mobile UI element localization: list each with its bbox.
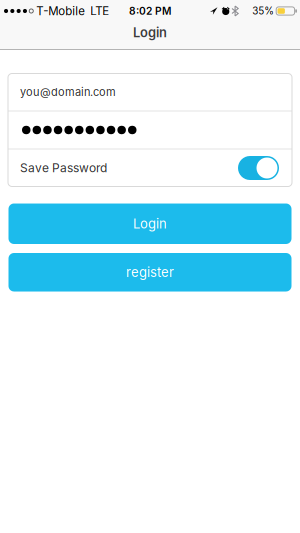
- button[interactable]: Save Password: [238, 156, 279, 180]
- staticText: Save Password: [20, 161, 107, 175]
- button[interactable]: Email: [8, 73, 292, 110]
- staticText: LTE: [90, 4, 109, 18]
- staticText: 8:02 PM: [129, 5, 171, 17]
- staticText: Login: [133, 216, 167, 232]
- staticText: you@domain.com: [20, 85, 116, 99]
- button[interactable]: Password: [8, 111, 292, 148]
- staticText: T-Mobile: [36, 4, 85, 18]
- staticText: register: [126, 264, 174, 280]
- button[interactable]: Login: [8, 203, 291, 244]
- staticText: Login: [133, 25, 167, 40]
- staticText: 35%: [252, 5, 274, 17]
- button[interactable]: register: [8, 253, 291, 291]
